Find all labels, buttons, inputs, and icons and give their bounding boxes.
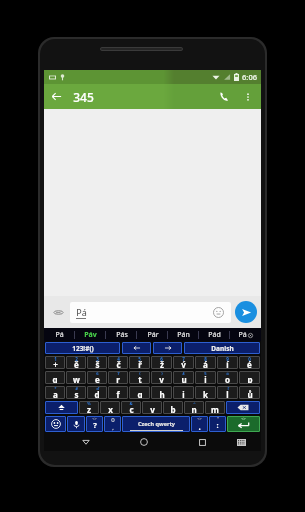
- button[interactable]: Switch keyboard: [232, 433, 250, 451]
- button[interactable]: 4: [173, 371, 194, 384]
- staticText: 7: [182, 356, 185, 362]
- button[interactable]: Voice input: [67, 416, 85, 432]
- button[interactable]: f: [108, 386, 128, 399]
- button[interactable]: Pá: [230, 328, 261, 341]
- staticText: ^: [193, 401, 196, 407]
- staticText: o: [225, 374, 230, 384]
- button[interactable]: ): [151, 371, 172, 384]
- button[interactable]: More options: [237, 86, 259, 108]
- button[interactable]: j: [173, 386, 194, 399]
- button[interactable]: Backspace: [226, 401, 260, 414]
- button[interactable]: 4: [108, 356, 128, 369]
- button[interactable]: <>: [191, 416, 208, 432]
- staticText: Pás: [116, 330, 128, 340]
- button[interactable]: #: [66, 386, 86, 399]
- button[interactable]: *: [45, 386, 65, 399]
- button[interactable]: v: [142, 401, 162, 414]
- staticText: Czech qwerty: [138, 420, 175, 427]
- button[interactable]: Pá: [44, 328, 75, 341]
- button[interactable]: Pár: [137, 328, 168, 341]
- button[interactable]: Pád: [199, 328, 230, 341]
- button[interactable]: Pán: [168, 328, 199, 341]
- button[interactable]: Home: [135, 433, 153, 451]
- staticText: 7: [117, 371, 120, 377]
- button[interactable]: p: [239, 371, 260, 384]
- button[interactable]: b: [163, 401, 183, 414]
- button[interactable]: q: [45, 371, 65, 384]
- staticText: m: [211, 404, 219, 414]
- button[interactable]: Space: [122, 416, 190, 432]
- button[interactable]: Call: [212, 84, 237, 109]
- button[interactable]: 0: [239, 356, 260, 369]
- button[interactable]: Send: [235, 301, 257, 323]
- button[interactable]: Move left: [122, 342, 151, 354]
- button[interactable]: h: [151, 386, 172, 399]
- staticText: Pád: [208, 330, 221, 340]
- button[interactable]: k: [195, 386, 216, 399]
- button[interactable]: ": [209, 416, 226, 432]
- staticText: #: [75, 386, 78, 392]
- button[interactable]: Pás: [106, 328, 137, 341]
- button[interactable]: x: [100, 401, 120, 414]
- staticText: 8: [204, 356, 207, 362]
- button[interactable]: Recents: [193, 433, 211, 451]
- staticText: <>: [92, 416, 97, 421]
- button[interactable]: 5: [195, 371, 216, 384]
- button[interactable]: 0: [104, 416, 121, 432]
- button[interactable]: 123!#(): [45, 342, 120, 354]
- staticText: ": [217, 416, 219, 422]
- button[interactable]: w: [66, 371, 86, 384]
- button[interactable]: Attach: [48, 302, 68, 322]
- staticText: z: [87, 404, 91, 414]
- staticText: 0: [111, 416, 115, 424]
- button[interactable]: ö: [217, 371, 238, 384]
- button[interactable]: Move right: [153, 342, 182, 354]
- button[interactable]: 1: [45, 356, 65, 369]
- button[interactable]: (: [129, 371, 150, 384]
- staticText: í: [226, 359, 229, 369]
- button[interactable]: Danish: [184, 342, 260, 354]
- staticText: (: [139, 371, 141, 377]
- staticText: ř: [138, 359, 142, 369]
- button[interactable]: ľ: [217, 386, 238, 399]
- button[interactable]: ď: [87, 386, 107, 399]
- button[interactable]: &: [121, 401, 141, 414]
- button[interactable]: Emoji: [45, 416, 66, 432]
- button[interactable]: %: [79, 401, 99, 414]
- staticText: Pán: [177, 330, 190, 340]
- button[interactable]: Back: [44, 84, 69, 109]
- staticText: f: [116, 389, 120, 399]
- staticText: +: [53, 359, 58, 369]
- staticText: 4: [117, 356, 120, 362]
- button[interactable]: 7: [173, 356, 194, 369]
- button[interactable]: 6: [87, 371, 107, 384]
- button[interactable]: Páv: [75, 328, 106, 341]
- button[interactable]: 5: [129, 356, 150, 369]
- button[interactable]: g: [129, 386, 150, 399]
- button[interactable]: 9: [217, 356, 238, 369]
- button[interactable]: <>: [86, 416, 103, 432]
- button[interactable]: Back: [77, 433, 95, 451]
- button[interactable]: m: [205, 401, 225, 414]
- button[interactable]: 2: [66, 356, 86, 369]
- button[interactable]: Shift: [45, 401, 78, 414]
- staticText: y: [159, 374, 164, 384]
- button[interactable]: 3: [87, 356, 107, 369]
- staticText: é: [247, 359, 252, 369]
- staticText: &: [129, 401, 133, 407]
- staticText: v: [150, 404, 155, 414]
- button[interactable]: ^: [184, 401, 204, 414]
- button[interactable]: Emoji: [212, 306, 225, 319]
- staticText: ý: [181, 359, 186, 369]
- button[interactable]: Enter: [227, 416, 260, 432]
- staticText: ): [161, 371, 163, 377]
- staticText: ,: [112, 424, 114, 432]
- button[interactable]: Pá: [70, 302, 231, 323]
- staticText: .: [198, 421, 201, 432]
- staticText: e: [95, 374, 100, 384]
- button[interactable]: ů: [239, 386, 260, 399]
- staticText: s: [74, 389, 79, 399]
- button[interactable]: 7: [108, 371, 128, 384]
- button[interactable]: 6: [151, 356, 172, 369]
- button[interactable]: 8: [195, 356, 216, 369]
